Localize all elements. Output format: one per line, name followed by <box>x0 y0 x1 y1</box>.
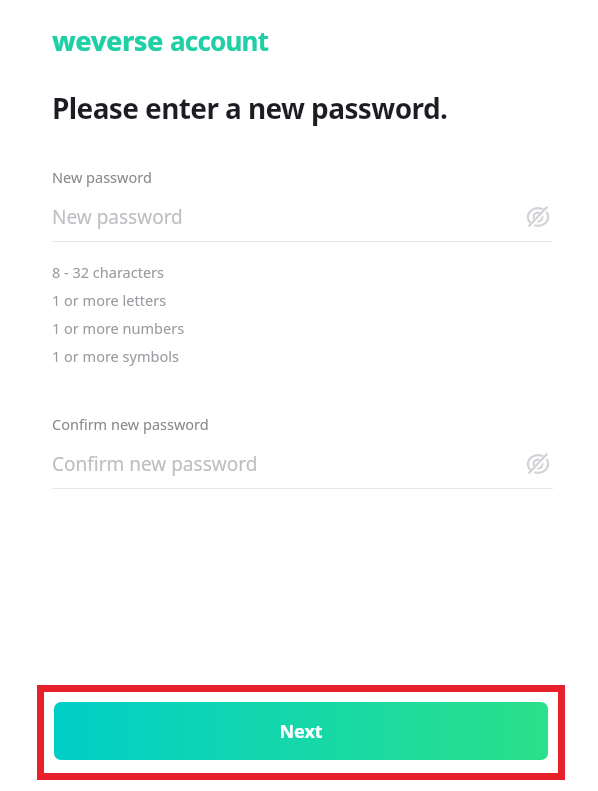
staticText: 8 - 32 characters <box>52 262 165 282</box>
staticText: New password <box>52 204 523 230</box>
staticText: Confirm new password <box>52 451 523 477</box>
staticText: 1 or more symbols <box>52 346 179 366</box>
staticText: 1 or more numbers <box>52 318 185 338</box>
staticText: 1 or more letters <box>52 290 167 310</box>
staticText: weverse <box>52 22 163 59</box>
staticText: account <box>170 23 269 58</box>
staticText: New password <box>52 167 152 187</box>
staticText: Next <box>279 719 323 744</box>
staticText: Confirm new password <box>52 414 209 434</box>
button[interactable]: Show password <box>523 449 553 479</box>
button[interactable]: Show password <box>523 202 553 232</box>
staticText: Please enter a new password. <box>52 89 448 127</box>
button[interactable]: Next <box>54 702 548 760</box>
